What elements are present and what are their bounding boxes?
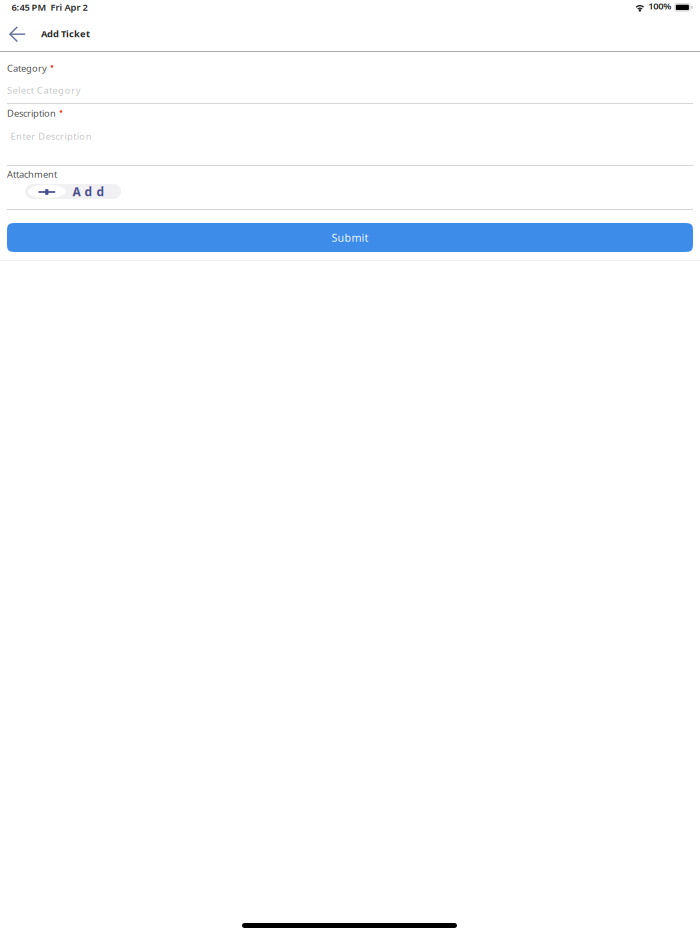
staticText: Add Ticket <box>41 27 90 40</box>
staticText: Category <box>7 62 47 74</box>
button[interactable]: A <box>25 184 121 199</box>
staticText: 6:45 PM <box>11 1 46 13</box>
button[interactable]: Back <box>5 22 30 46</box>
staticText: Select Category <box>7 84 81 96</box>
staticText: d <box>97 183 105 199</box>
staticText: 100% <box>648 0 671 12</box>
staticText: Fri Apr 2 <box>50 1 87 13</box>
staticText: Description <box>7 107 56 119</box>
staticText: Attachment <box>7 168 57 180</box>
staticText: Submit <box>331 230 368 245</box>
staticText: A <box>73 183 81 199</box>
button[interactable]: Submit <box>7 223 693 252</box>
staticText: Enter Description <box>10 130 92 142</box>
staticText: d <box>85 183 93 199</box>
